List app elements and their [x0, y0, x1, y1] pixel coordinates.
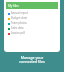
button[interactable]: Sales data — [4, 26, 60, 31]
button[interactable]: Invoice.pdf — [4, 31, 60, 36]
button[interactable]: Team photos — [4, 21, 60, 26]
button[interactable]: My files — [6, 2, 58, 9]
staticText: Team photos — [11, 21, 27, 25]
staticText: Invoice.pdf — [11, 31, 25, 35]
staticText: My files — [8, 4, 19, 8]
staticText: Annual report — [11, 11, 28, 15]
button[interactable]: Annual report — [4, 11, 60, 16]
button[interactable]: Budget sheet — [4, 16, 60, 21]
staticText: Sales data — [11, 26, 24, 30]
staticText: Budget sheet — [11, 16, 28, 20]
staticText: Manage your connected files — [19, 55, 45, 65]
